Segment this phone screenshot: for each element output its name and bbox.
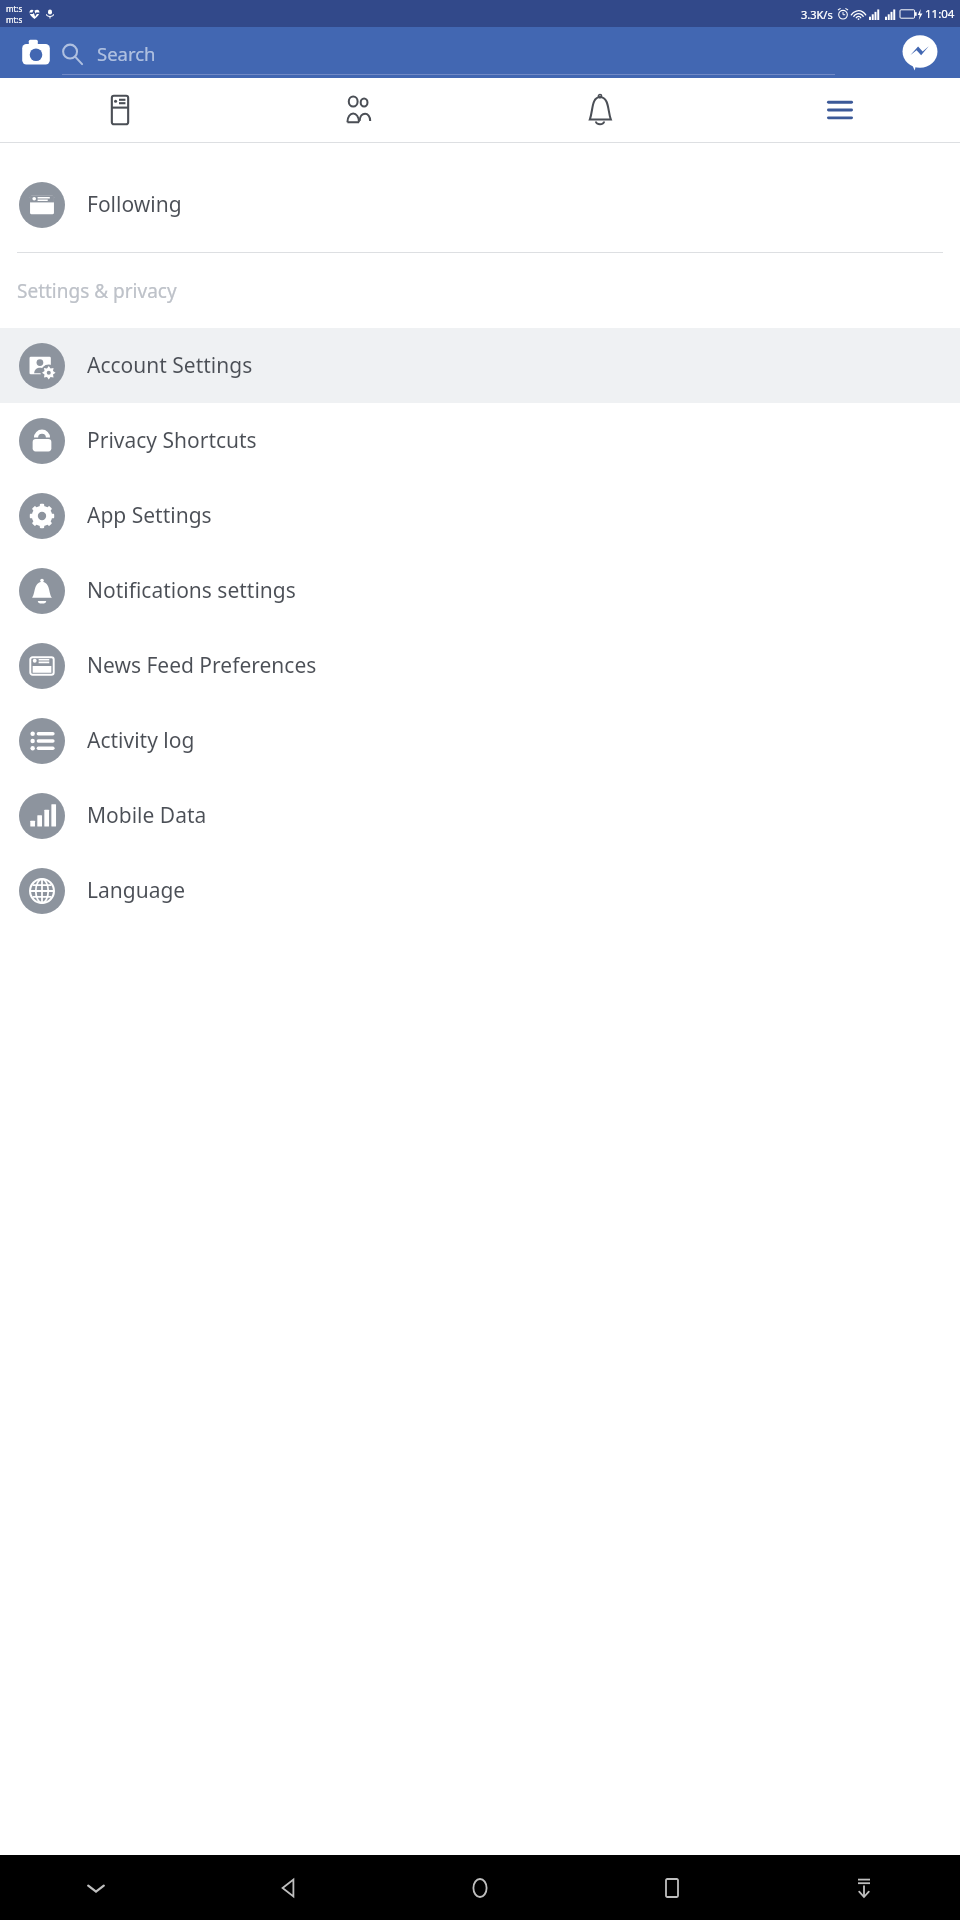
button[interactable]: Recents (576, 1855, 768, 1920)
staticText: 3.3K/s (801, 7, 833, 22)
staticText: Privacy Shortcuts (87, 426, 257, 455)
button[interactable]: Privacy Shortcuts (0, 403, 960, 478)
button[interactable]: Mobile Data (0, 778, 960, 853)
button[interactable]: Back (192, 1855, 384, 1920)
button[interactable]: Account Settings (0, 328, 960, 403)
button[interactable]: Search (60, 31, 835, 75)
button[interactable]: Menu (720, 78, 960, 142)
staticText: Following (87, 190, 182, 219)
button[interactable]: News Feed (0, 78, 240, 142)
button[interactable]: Following (0, 161, 960, 248)
staticText: Notifications settings (87, 576, 296, 605)
staticText: App Settings (87, 501, 212, 530)
button[interactable]: Camera (16, 33, 56, 73)
staticText: Account Settings (87, 351, 253, 380)
staticText: Mobile Data (87, 801, 207, 830)
button[interactable]: Messenger (898, 31, 942, 75)
button[interactable]: News Feed Preferences (0, 628, 960, 703)
button[interactable]: Notifications settings (0, 553, 960, 628)
button[interactable]: Activity log (0, 703, 960, 778)
staticText: News Feed Preferences (87, 651, 317, 680)
button[interactable]: Friends (240, 78, 480, 142)
staticText: Language (87, 876, 186, 905)
staticText: Settings & privacy (17, 278, 177, 304)
button[interactable]: Hide navigation bar (768, 1855, 960, 1920)
staticText: Activity log (87, 726, 195, 755)
staticText: mt:s (6, 3, 23, 14)
button[interactable]: Notifications (480, 78, 720, 142)
staticText: 11:04 (925, 6, 955, 22)
staticText: mt:s (6, 14, 23, 25)
button[interactable]: Language (0, 853, 960, 928)
staticText: Search (97, 41, 156, 66)
button[interactable]: Collapse (0, 1855, 192, 1920)
button[interactable]: App Settings (0, 478, 960, 553)
button[interactable]: Home (384, 1855, 576, 1920)
